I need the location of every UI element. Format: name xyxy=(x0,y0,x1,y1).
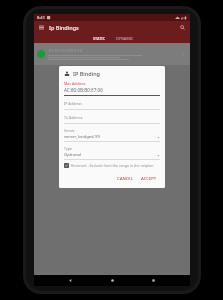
button[interactable]: 10.10.10.103:7:16 xyxy=(34,43,190,65)
button[interactable]: CANCEL xyxy=(114,174,136,184)
button[interactable]: Recent apps xyxy=(149,276,158,285)
staticText: 10.10.10.103:7:16 xyxy=(48,48,83,54)
button[interactable]: Search xyxy=(178,23,187,32)
staticText: ACCEPT xyxy=(141,176,157,182)
button[interactable]: server_bridged-99 xyxy=(64,134,160,142)
staticText: Ip Bindings xyxy=(49,24,79,31)
staticText: CANCEL xyxy=(117,176,133,182)
staticText: IP Binding xyxy=(73,70,101,77)
staticText: Reserved - Exclude from the range in the… xyxy=(71,163,154,168)
staticText: Mac Address xyxy=(64,81,86,86)
staticText: To Address xyxy=(64,115,83,120)
staticText: Type xyxy=(64,146,72,151)
staticText: 8:41 xyxy=(37,15,45,20)
staticText: Optional xyxy=(64,152,157,158)
button[interactable]: Back xyxy=(66,276,75,285)
button[interactable]: Reserved - Exclude from the range in the… xyxy=(64,163,160,168)
button[interactable]: Home xyxy=(108,276,117,285)
button[interactable]: STATIC xyxy=(86,34,112,43)
staticText: server_bridged-99 xyxy=(64,134,157,140)
button[interactable]: DYNAMIC xyxy=(112,34,138,43)
button[interactable]: Open navigation menu xyxy=(37,23,46,32)
staticText: AC:80:0B:B0:E7:06 xyxy=(64,87,103,93)
staticText: STATIC xyxy=(93,36,106,41)
staticText: DYNAMIC xyxy=(116,36,134,41)
staticText: Server xyxy=(64,128,75,133)
staticText: IP Address xyxy=(64,101,82,106)
button[interactable]: ACCEPT xyxy=(138,174,160,184)
button[interactable]: Optional xyxy=(64,152,160,160)
